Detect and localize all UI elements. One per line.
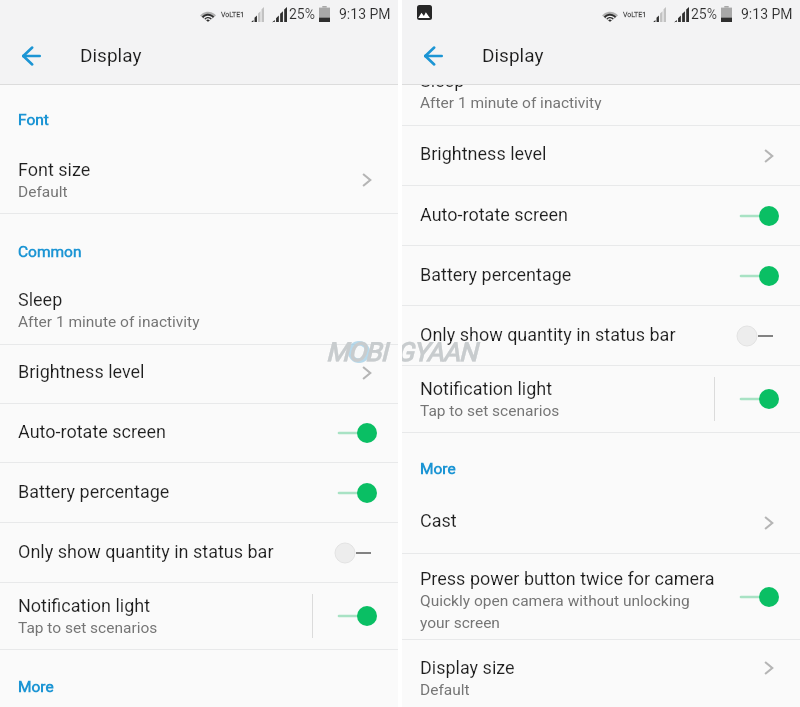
staticText: Tap to set scenarios bbox=[18, 619, 158, 637]
staticText: Font bbox=[18, 111, 49, 129]
staticText: Auto-rotate screen bbox=[18, 421, 166, 442]
staticText: More bbox=[18, 678, 54, 696]
button[interactable]: Brightness level bbox=[402, 126, 800, 185]
button[interactable]: Display size bbox=[402, 640, 800, 707]
button[interactable]: Press power button twice for camera bbox=[402, 554, 800, 639]
staticText: 25% bbox=[289, 6, 315, 22]
staticText: Display bbox=[482, 44, 544, 66]
button[interactable]: Battery percentage bbox=[0, 463, 398, 522]
button[interactable]: On bbox=[737, 384, 779, 414]
staticText: Quickly open camera without unlocking yo… bbox=[420, 592, 690, 632]
button[interactable]: Battery percentage bbox=[402, 246, 800, 305]
staticText: Only show quantity in status bar bbox=[420, 324, 676, 345]
staticText: Default bbox=[420, 681, 470, 699]
staticText: Battery percentage bbox=[420, 264, 572, 285]
button[interactable]: Font size bbox=[0, 128, 398, 213]
button[interactable]: Only show quantity in status bar bbox=[402, 306, 800, 365]
staticText: After 1 minute of inactivity bbox=[18, 313, 200, 331]
staticText: Common bbox=[18, 243, 82, 261]
staticText: Press power button twice for camera bbox=[420, 568, 715, 589]
button[interactable]: Sleep bbox=[402, 85, 800, 125]
staticText: GYAAN bbox=[402, 337, 477, 367]
staticText: VoLTE1 bbox=[623, 11, 647, 19]
staticText: Sleep bbox=[420, 85, 465, 91]
staticText: After 1 minute of inactivity bbox=[420, 94, 602, 110]
button[interactable]: Off bbox=[335, 538, 377, 568]
button[interactable]: Brightness level bbox=[0, 345, 398, 403]
button[interactable]: Notification light bbox=[0, 583, 398, 649]
staticText: Notification light bbox=[420, 378, 553, 399]
button[interactable]: Cast bbox=[402, 489, 800, 553]
staticText: Notification light bbox=[18, 595, 151, 616]
staticText: Brightness level bbox=[420, 143, 547, 164]
staticText: Tap to set scenarios bbox=[420, 402, 560, 420]
button[interactable]: On bbox=[335, 478, 377, 508]
staticText: Display bbox=[80, 44, 142, 66]
staticText: VoLTE1 bbox=[221, 11, 245, 19]
button[interactable]: Only show quantity in status bar bbox=[0, 523, 398, 582]
button[interactable]: Back bbox=[10, 35, 52, 77]
button[interactable]: Auto-rotate screen bbox=[402, 186, 800, 245]
staticText: Only show quantity in status bar bbox=[18, 541, 274, 562]
staticText: 25% bbox=[691, 6, 717, 22]
staticText: 9:13 PM bbox=[339, 6, 391, 22]
staticText: MOBIGYAAN bbox=[326, 337, 398, 369]
button[interactable]: On bbox=[737, 201, 779, 231]
staticText: Display size bbox=[420, 657, 515, 678]
button[interactable]: Off bbox=[737, 321, 779, 351]
staticText: Brightness level bbox=[18, 361, 145, 382]
button[interactable]: On bbox=[335, 601, 377, 631]
staticText: More bbox=[420, 460, 456, 478]
staticText: Font size bbox=[18, 159, 91, 180]
staticText: Auto-rotate screen bbox=[420, 204, 568, 225]
button[interactable]: On bbox=[737, 261, 779, 291]
staticText: Default bbox=[18, 183, 68, 201]
staticText: Cast bbox=[420, 510, 457, 531]
staticText: Sleep bbox=[18, 289, 63, 310]
button[interactable]: Back bbox=[412, 35, 454, 77]
button[interactable]: Sleep bbox=[0, 271, 398, 344]
button[interactable]: On bbox=[737, 582, 779, 612]
staticText: 9:13 PM bbox=[741, 6, 793, 22]
button[interactable]: On bbox=[335, 418, 377, 448]
button[interactable]: Notification light bbox=[402, 366, 800, 432]
staticText: Battery percentage bbox=[18, 481, 170, 502]
button[interactable]: Auto-rotate screen bbox=[0, 404, 398, 462]
